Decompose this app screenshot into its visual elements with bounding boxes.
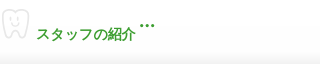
staticText: スタッフの紹介 [36, 26, 136, 44]
button[interactable]: Tooth logo [0, 0, 320, 64]
other: Tooth logo [2, 9, 30, 40]
